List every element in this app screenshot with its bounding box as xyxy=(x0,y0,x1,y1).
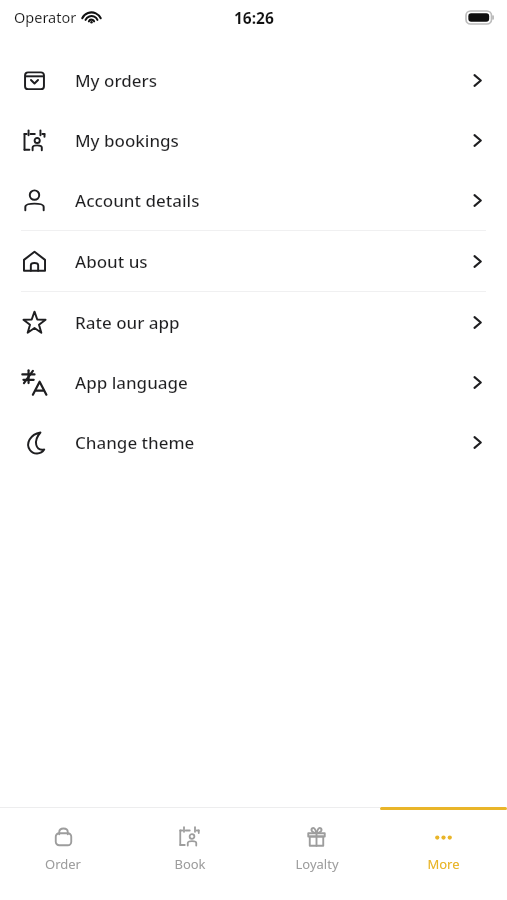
button[interactable]: Book xyxy=(126,810,253,873)
button[interactable]: My bookings xyxy=(0,110,507,170)
button[interactable]: About us xyxy=(0,231,507,291)
staticText: Change theme xyxy=(75,431,195,454)
staticText: My bookings xyxy=(75,129,179,152)
button[interactable]: Change theme xyxy=(0,412,507,472)
button[interactable]: My orders xyxy=(0,50,507,110)
button[interactable]: Order xyxy=(0,810,126,873)
button[interactable]: App language xyxy=(0,352,507,412)
staticText: 16:26 xyxy=(234,7,274,28)
staticText: More xyxy=(427,855,460,873)
button[interactable]: Account details xyxy=(0,170,507,230)
staticText: Account details xyxy=(75,189,200,212)
staticText: Operator xyxy=(14,7,77,27)
staticText: About us xyxy=(75,250,148,273)
staticText: App language xyxy=(75,371,188,394)
button[interactable]: More xyxy=(380,810,507,873)
button[interactable]: Rate our app xyxy=(0,292,507,352)
staticText: Book xyxy=(174,855,206,873)
staticText: Loyalty xyxy=(295,855,339,873)
staticText: My orders xyxy=(75,69,157,92)
button[interactable]: Loyalty xyxy=(253,810,380,873)
staticText: Order xyxy=(45,855,81,873)
staticText: Rate our app xyxy=(75,311,180,334)
